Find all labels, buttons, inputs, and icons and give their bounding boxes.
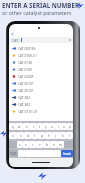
staticText: k (62, 134, 64, 138)
staticText: n (53, 143, 55, 147)
staticText: CAT-STUK-01 (18, 54, 37, 58)
staticText: w (18, 125, 21, 129)
staticText: l (69, 134, 70, 138)
button[interactable]: CAT-0138 (9, 59, 73, 66)
staticText: Search (63, 152, 72, 156)
staticText: CAT-0138 (18, 61, 32, 65)
button[interactable]: b (43, 141, 50, 148)
button[interactable]: ?123 (9, 150, 18, 157)
button[interactable]: e (23, 123, 30, 130)
staticText: CAT-00101 (18, 89, 34, 93)
staticText: d (27, 134, 29, 138)
staticText: CAT-0189 (18, 68, 32, 72)
staticText: b (46, 143, 48, 147)
button[interactable]: CAT-00101 (9, 80, 73, 87)
button[interactable] (25, 150, 54, 157)
staticText: u (51, 125, 53, 129)
button[interactable]: w (16, 123, 23, 130)
button[interactable]: Back (9, 30, 73, 37)
button[interactable]: CAT-382 (9, 94, 73, 101)
button[interactable]: s (17, 132, 24, 139)
staticText: CAT-382 (18, 96, 30, 100)
button[interactable]: h (45, 132, 52, 139)
staticText: x (25, 143, 27, 147)
staticText: p (69, 125, 71, 129)
button[interactable]: q (9, 123, 16, 130)
button[interactable]: v (36, 141, 43, 148)
staticText: CAT-0204F (18, 75, 34, 79)
staticText: s (20, 134, 22, 138)
staticText: CAT-07-01-01 (18, 110, 38, 114)
staticText: g (41, 134, 43, 138)
staticText: z (19, 143, 21, 147)
staticText: a (12, 134, 14, 138)
staticText: y (45, 125, 47, 129)
staticText: ?123 (10, 152, 17, 156)
staticText: e (26, 125, 28, 129)
button[interactable]: i (55, 123, 61, 130)
button[interactable]: d (24, 132, 31, 139)
staticText: CAT-00101 (18, 82, 34, 86)
button[interactable]: CAT-0204F (9, 73, 73, 80)
button[interactable]: CAT-00101 (9, 87, 73, 94)
staticText: i (58, 125, 59, 129)
button[interactable]: o (61, 123, 67, 130)
button[interactable]: c (29, 141, 36, 148)
button[interactable]: z (17, 141, 23, 148)
staticText: v (39, 143, 41, 147)
staticText: j (55, 134, 56, 138)
staticText: t (39, 125, 41, 129)
button[interactable]: CAT-0189 (9, 66, 73, 73)
button[interactable]: j (52, 132, 59, 139)
button[interactable]: CAT-000169 (9, 45, 73, 52)
staticText: f (34, 134, 36, 138)
button[interactable]: g (38, 132, 45, 139)
staticText: CAT-000169 (18, 47, 36, 51)
staticText: ENTER A SERIAL NUMBER (2, 1, 79, 9)
staticText: h (48, 134, 50, 138)
button[interactable]: a (9, 132, 17, 139)
button[interactable]: m (57, 141, 64, 148)
button[interactable]: CAT- (12, 37, 71, 43)
staticText: or other catalyst parameters (2, 9, 72, 16)
button[interactable]: . (54, 150, 61, 157)
button[interactable]: k (59, 132, 66, 139)
button[interactable]: , (18, 150, 25, 157)
staticText: q (12, 125, 14, 129)
staticText: c (32, 143, 34, 147)
staticText: m (59, 143, 62, 147)
button[interactable]: u (49, 123, 55, 130)
button[interactable]: t (37, 123, 43, 130)
button[interactable]: CAT-STUK-01 (9, 52, 73, 59)
button[interactable]: Search (61, 150, 73, 157)
staticText: CAT- (12, 38, 20, 43)
button[interactable]: f (31, 132, 38, 139)
button[interactable]: CAT-382 (9, 101, 73, 108)
button[interactable]: x (23, 141, 29, 148)
button[interactable]: p (67, 123, 73, 130)
staticText: CAT-382 (18, 103, 30, 107)
staticText: . (57, 152, 58, 156)
button[interactable]: r (30, 123, 37, 130)
button[interactable]: l (66, 132, 73, 139)
button[interactable]: n (50, 141, 57, 148)
staticText: o (63, 125, 65, 129)
staticText: r (33, 125, 35, 129)
staticText: , (21, 152, 22, 156)
button[interactable]: CAT-07-01-01 (9, 108, 73, 115)
button[interactable]: y (43, 123, 49, 130)
